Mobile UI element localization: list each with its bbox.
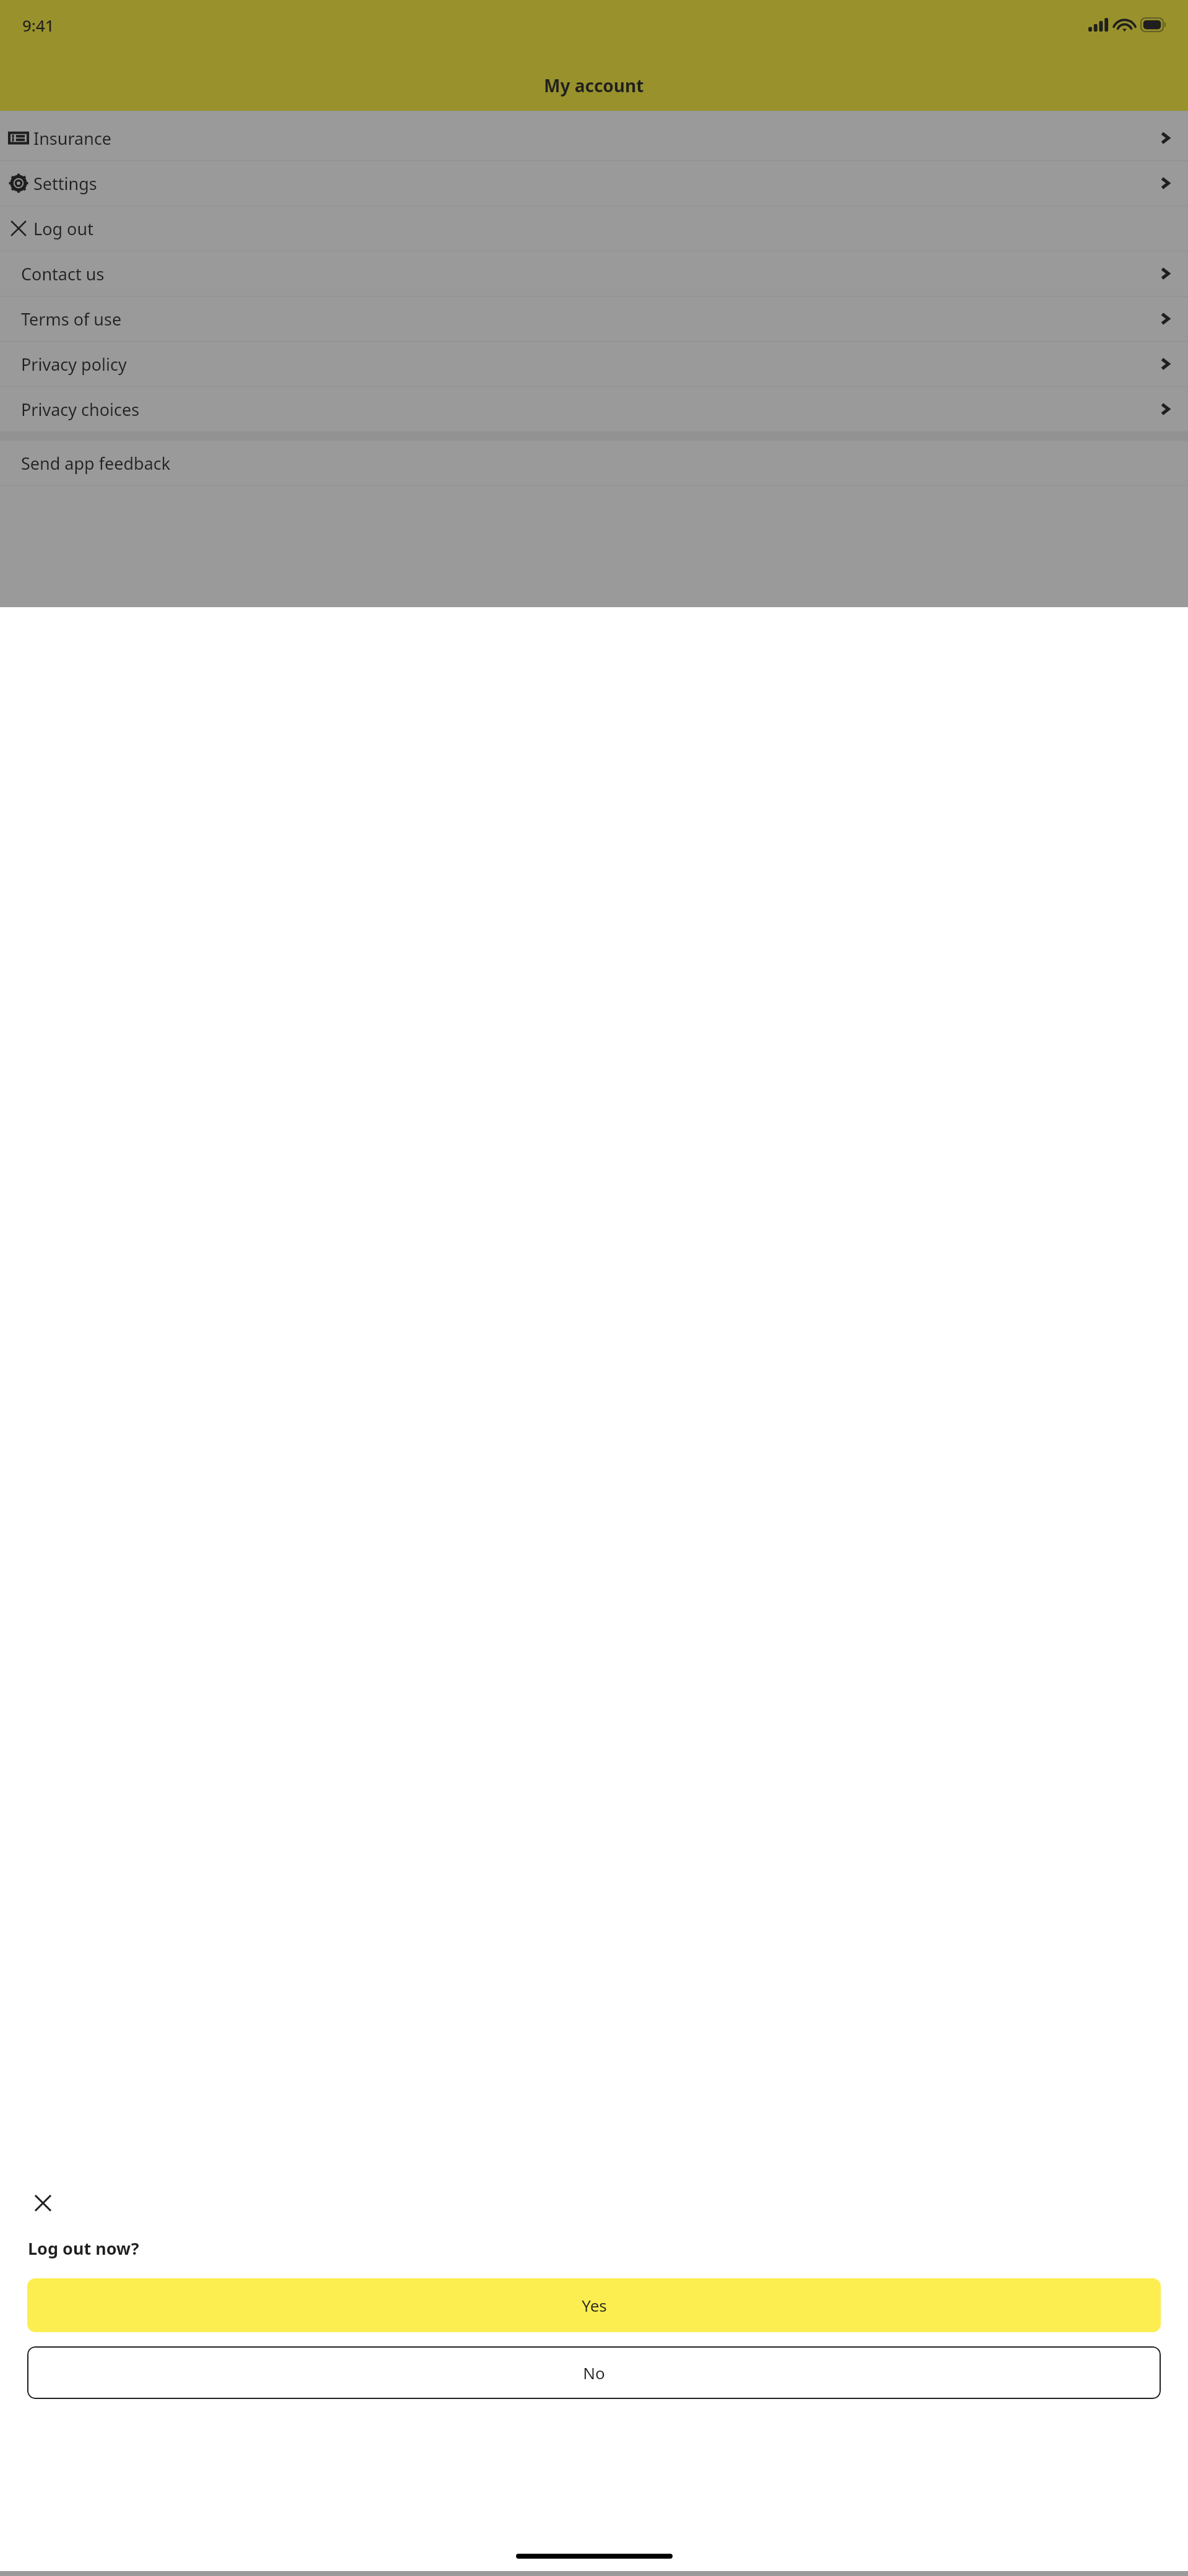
staticText: Settings xyxy=(33,172,97,195)
button[interactable]: Send app feedback xyxy=(0,441,1188,485)
staticText: Contact us xyxy=(21,262,105,285)
staticText: Send app feedback xyxy=(21,452,171,475)
button[interactable]: Yes xyxy=(27,2278,1161,2332)
staticText: No xyxy=(583,2362,605,2384)
button[interactable]: Privacy policy xyxy=(0,342,1188,386)
button[interactable]: No xyxy=(27,2346,1161,2399)
staticText: Insurance xyxy=(33,127,112,150)
staticText: Log out now? xyxy=(28,2237,139,2260)
staticText: Terms of use xyxy=(21,308,122,331)
button[interactable]: Log out xyxy=(0,206,1188,251)
button[interactable]: Privacy choices xyxy=(0,387,1188,431)
button[interactable]: Settings xyxy=(0,161,1188,205)
staticText: Privacy policy xyxy=(21,353,127,376)
staticText: Log out xyxy=(33,217,93,240)
staticText: Yes xyxy=(582,2294,607,2316)
staticText: My account xyxy=(544,74,644,97)
staticText: 9:41 xyxy=(22,14,54,36)
button[interactable]: Close xyxy=(27,2187,58,2218)
button[interactable]: Terms of use xyxy=(0,296,1188,341)
button[interactable]: Insurance xyxy=(0,116,1188,160)
button[interactable]: Contact us xyxy=(0,251,1188,296)
staticText: Privacy choices xyxy=(21,398,140,421)
